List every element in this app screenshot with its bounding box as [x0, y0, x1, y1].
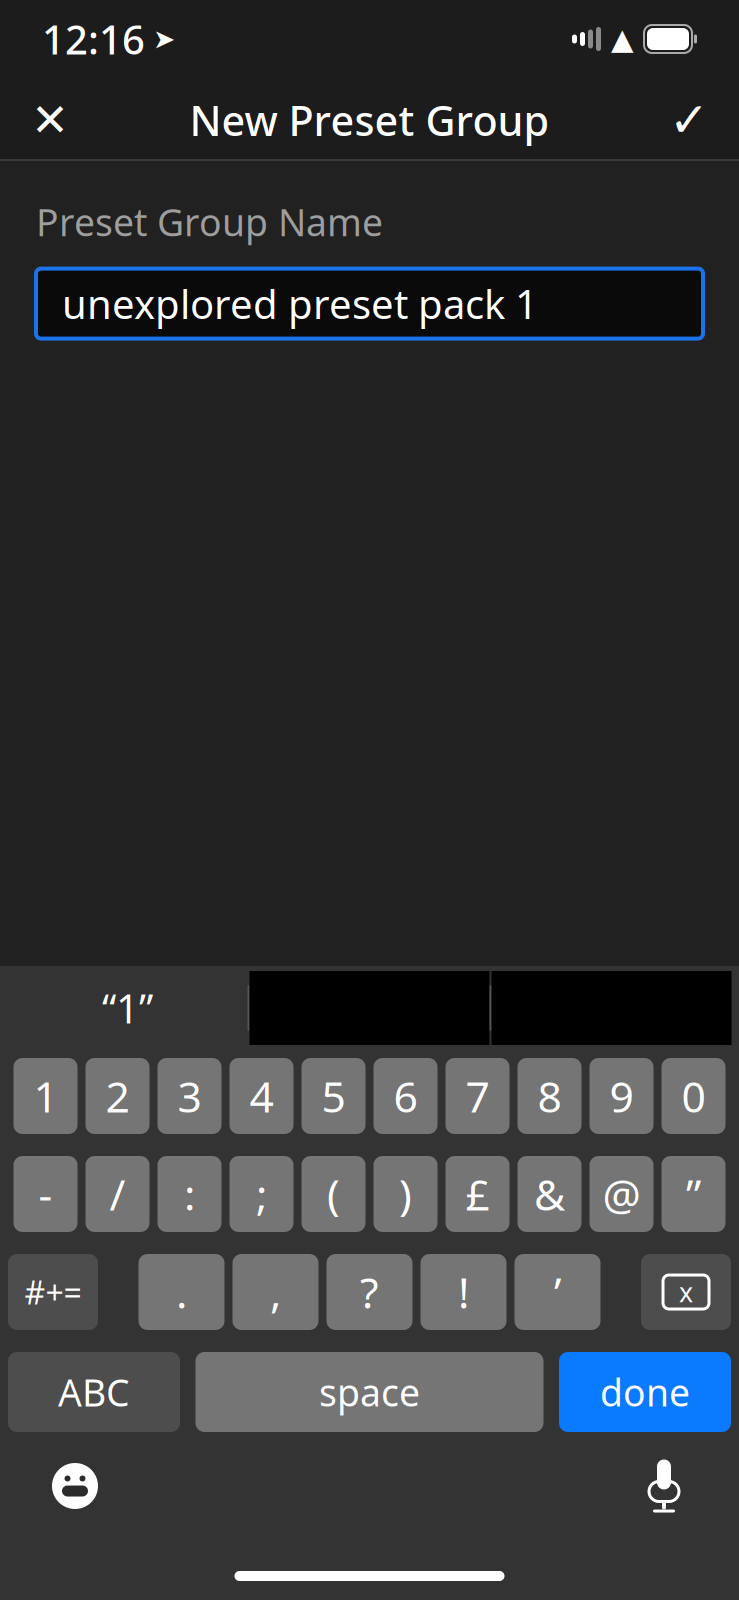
button[interactable]: (	[301, 1156, 365, 1232]
staticText: 2	[105, 1068, 129, 1124]
staticText: New Preset Group	[189, 93, 549, 147]
button[interactable]: Dictation	[619, 1446, 709, 1526]
button[interactable]: 2	[85, 1058, 149, 1134]
staticText: 12:16	[42, 12, 145, 65]
staticText: ;	[256, 1166, 267, 1222]
staticText: -	[38, 1166, 52, 1222]
button[interactable]: 7	[445, 1058, 509, 1134]
button[interactable]: ?	[326, 1254, 412, 1330]
button[interactable]: done	[559, 1352, 731, 1432]
button[interactable]: unexplored preset pack 1	[36, 269, 703, 339]
button[interactable]: :	[157, 1156, 221, 1232]
staticText: Preset Group Name	[36, 197, 383, 247]
button[interactable]: .	[138, 1254, 224, 1330]
staticText: ✕	[31, 94, 69, 146]
staticText: ?	[360, 1264, 379, 1320]
staticText: ”	[686, 1166, 701, 1222]
button[interactable]: Close	[12, 82, 88, 158]
staticText: 8	[537, 1068, 561, 1124]
staticText: ▲	[611, 22, 634, 56]
button[interactable]: ,	[232, 1254, 318, 1330]
staticText: .	[176, 1264, 187, 1320]
button[interactable]: “1”	[7, 971, 247, 1045]
button[interactable]: Save	[651, 82, 727, 158]
staticText: 0	[681, 1068, 705, 1124]
staticText: “1”	[102, 981, 153, 1034]
button[interactable]: /	[85, 1156, 149, 1232]
staticText: ✓	[669, 93, 709, 147]
staticText: done	[600, 1367, 690, 1417]
staticText: &	[534, 1166, 565, 1222]
staticText: 7	[465, 1068, 489, 1124]
staticText: ➤	[153, 24, 175, 54]
staticText: ,	[270, 1264, 281, 1320]
staticText: 9	[609, 1068, 633, 1124]
button[interactable]: ”	[661, 1156, 725, 1232]
button[interactable]: @	[589, 1156, 653, 1232]
staticText: space	[319, 1367, 420, 1417]
staticText: unexplored preset pack 1	[62, 277, 538, 330]
staticText: )	[399, 1166, 412, 1222]
button[interactable]: ABC	[8, 1352, 180, 1432]
staticText: £	[465, 1166, 489, 1222]
button[interactable]: 8	[517, 1058, 581, 1134]
staticText: !	[458, 1264, 469, 1320]
staticText: 3	[177, 1068, 201, 1124]
button[interactable]: #+=	[8, 1254, 98, 1330]
button[interactable]: space	[195, 1352, 543, 1432]
button[interactable]: Emoji	[30, 1446, 120, 1526]
button[interactable]: 5	[301, 1058, 365, 1134]
button[interactable]: ;	[229, 1156, 293, 1232]
staticText: 5	[321, 1068, 345, 1124]
staticText: /	[109, 1166, 125, 1222]
staticText: 1	[33, 1068, 57, 1124]
button[interactable]: ’	[514, 1254, 600, 1330]
button[interactable]: Delete	[641, 1254, 731, 1330]
staticText: (	[327, 1166, 340, 1222]
staticText: @	[602, 1166, 640, 1222]
button[interactable]: &	[517, 1156, 581, 1232]
staticText: 4	[249, 1068, 273, 1124]
button[interactable]: 1	[13, 1058, 77, 1134]
button[interactable]: -	[13, 1156, 77, 1232]
button[interactable]: !	[420, 1254, 506, 1330]
staticText: ABC	[58, 1367, 130, 1417]
button[interactable]: 6	[373, 1058, 437, 1134]
button[interactable]: )	[373, 1156, 437, 1232]
staticText: x	[679, 1274, 693, 1310]
button[interactable]: 3	[157, 1058, 221, 1134]
button[interactable]: 4	[229, 1058, 293, 1134]
staticText: #+=	[24, 1271, 81, 1313]
button[interactable]: 0	[661, 1058, 725, 1134]
staticText: :	[184, 1166, 195, 1222]
staticText: ’	[554, 1264, 561, 1320]
button[interactable]: 9	[589, 1058, 653, 1134]
button[interactable]: £	[445, 1156, 509, 1232]
staticText: 6	[393, 1068, 417, 1124]
